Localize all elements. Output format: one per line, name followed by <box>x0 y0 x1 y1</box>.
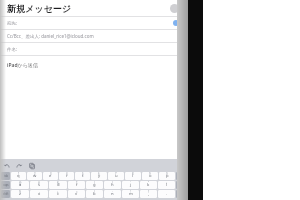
button[interactable]: + <box>49 190 67 198</box>
staticText: 5 <box>82 172 84 176</box>
button[interactable]: 送信 <box>170 4 179 13</box>
button[interactable]: 6 <box>91 172 107 180</box>
button[interactable]: ) <box>104 181 121 189</box>
staticText: caps <box>3 183 9 187</box>
staticText: 0 <box>166 172 168 176</box>
button[interactable]: 件名: <box>0 43 188 55</box>
staticText: 宛先: <box>7 20 173 26</box>
button[interactable]: 7 <box>108 172 124 180</box>
staticText: iPadから送信 <box>7 62 38 69</box>
button[interactable]: やり直す <box>15 162 23 170</box>
staticText: 9 <box>149 172 151 176</box>
button[interactable]: % <box>11 190 29 198</box>
staticText: return <box>178 183 186 187</box>
staticText: p <box>166 173 169 179</box>
staticText: f <box>76 182 78 188</box>
button[interactable]: @ <box>11 181 29 189</box>
staticText: j <box>130 182 132 188</box>
staticText: e <box>49 173 52 179</box>
button[interactable]: # <box>30 181 48 189</box>
staticText: & <box>57 181 59 185</box>
button[interactable]: shift <box>176 190 187 198</box>
staticText: @ <box>19 181 22 185</box>
staticText: g <box>93 182 96 188</box>
button[interactable]: * <box>68 181 85 189</box>
button[interactable]: shift <box>1 190 10 198</box>
staticText: shift <box>179 192 185 196</box>
button[interactable]: : <box>158 181 175 189</box>
staticText: + <box>57 190 59 194</box>
button[interactable]: iPadから送信 <box>0 56 188 159</box>
button[interactable]: delete <box>176 172 187 180</box>
staticText: s <box>38 182 41 188</box>
staticText: u <box>115 173 118 179</box>
button[interactable]: = <box>68 190 85 198</box>
staticText: : <box>166 181 167 185</box>
staticText: . <box>166 191 168 197</box>
staticText: ' <box>130 181 131 185</box>
button[interactable]: tab <box>1 172 10 180</box>
button[interactable]: 連絡先を追加 <box>173 20 179 26</box>
button[interactable]: 4 <box>59 172 74 180</box>
button[interactable]: 3 <box>43 172 58 180</box>
staticText: / <box>94 190 95 194</box>
staticText: d <box>57 182 60 188</box>
staticText: tab <box>4 174 8 178</box>
button[interactable]: " <box>140 181 157 189</box>
button[interactable]: / <box>86 190 103 198</box>
staticText: shift <box>3 192 9 196</box>
button[interactable]: 1 <box>11 172 26 180</box>
button[interactable]: & <box>49 181 67 189</box>
staticText: k <box>147 182 150 188</box>
staticText: l <box>166 182 168 188</box>
staticText: * <box>76 181 78 185</box>
staticText: m <box>129 191 133 197</box>
button[interactable]: ' <box>122 181 139 189</box>
staticText: ; <box>112 190 113 194</box>
staticText: - <box>39 190 40 194</box>
staticText: 2 <box>34 172 36 176</box>
button[interactable]: . <box>158 190 175 198</box>
staticText: = <box>76 190 78 194</box>
button[interactable]: 2 <box>27 172 42 180</box>
button[interactable]: 宛先: <box>0 17 188 29</box>
button[interactable]: ; <box>104 190 121 198</box>
button[interactable]: 元に戻す <box>3 162 11 170</box>
button[interactable]: 5 <box>75 172 90 180</box>
button[interactable]: 0 <box>159 172 175 180</box>
staticText: 1 <box>18 172 20 176</box>
staticText: # <box>38 181 40 185</box>
staticText: w <box>33 173 37 179</box>
staticText: a <box>19 182 22 188</box>
button[interactable]: ペースト <box>28 162 36 170</box>
staticText: delete <box>178 174 186 178</box>
staticText: t <box>82 173 84 179</box>
staticText: q <box>17 173 20 179</box>
staticText: 新規メッセージ <box>7 3 71 14</box>
staticText: " <box>148 181 150 185</box>
staticText: 6 <box>98 172 100 176</box>
staticText: h <box>111 182 114 188</box>
button[interactable]: - <box>30 190 48 198</box>
staticText: 8 <box>132 172 134 176</box>
button[interactable]: ( <box>86 181 103 189</box>
staticText: ? <box>148 190 150 194</box>
staticText: b <box>93 191 96 197</box>
staticText: % <box>19 190 22 194</box>
button[interactable]: 9 <box>142 172 158 180</box>
staticText: , <box>148 191 150 197</box>
staticText: ( <box>94 181 95 185</box>
staticText: 4 <box>66 172 68 176</box>
button[interactable]: ! <box>122 190 139 198</box>
button[interactable]: Cc/Bcc、差出人: daniel_rice1@icloud.com <box>0 30 188 42</box>
staticText: 7 <box>115 172 117 176</box>
staticText: 件名: <box>7 46 188 52</box>
button[interactable]: ? <box>140 190 157 198</box>
staticText: o <box>149 173 152 179</box>
button[interactable]: caps <box>1 181 10 189</box>
button[interactable]: return <box>176 181 187 189</box>
button[interactable]: 8 <box>125 172 141 180</box>
staticText: n <box>111 191 114 197</box>
staticText: ! <box>130 190 131 194</box>
staticText: v <box>75 191 78 197</box>
